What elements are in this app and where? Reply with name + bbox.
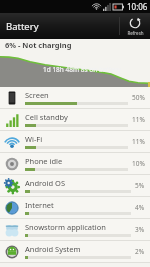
- button[interactable]: Screen: [0, 87, 150, 109]
- button[interactable]: Phone idle: [0, 153, 150, 175]
- button[interactable]: Refresh: [120, 13, 150, 39]
- button[interactable]: Cell standby: [0, 109, 150, 131]
- staticText: 4%: [135, 203, 145, 212]
- staticText: Battery: [6, 20, 39, 33]
- staticText: 11%: [132, 115, 145, 124]
- staticText: 3%: [135, 225, 145, 234]
- button[interactable]: Snowstorm application: [0, 219, 150, 241]
- staticText: Wi-Fi: [25, 134, 43, 144]
- staticText: Snowstorm application: [25, 222, 106, 232]
- button[interactable]: Android System: [0, 241, 150, 263]
- staticText: Phone idle: [25, 156, 63, 166]
- staticText: Refresh: [127, 30, 144, 36]
- staticText: Android System: [25, 244, 81, 254]
- staticText: 1d 18h 48m 8s on battery: [43, 65, 121, 74]
- staticText: 50%: [132, 93, 145, 102]
- staticText: Cell standby: [25, 112, 68, 122]
- staticText: Android OS: [25, 178, 65, 188]
- staticText: 10%: [132, 159, 145, 168]
- staticText: 2%: [135, 247, 145, 256]
- staticText: 11%: [132, 137, 145, 146]
- button[interactable]: Wi-Fi: [0, 131, 150, 153]
- button[interactable]: Internet: [0, 197, 150, 219]
- staticText: 5%: [135, 181, 145, 190]
- staticText: 10:06: [127, 1, 148, 12]
- staticText: 6% - Not charging: [5, 40, 72, 50]
- button[interactable]: Android OS: [0, 175, 150, 197]
- staticText: Internet: [25, 200, 54, 210]
- staticText: Screen: [25, 90, 49, 100]
